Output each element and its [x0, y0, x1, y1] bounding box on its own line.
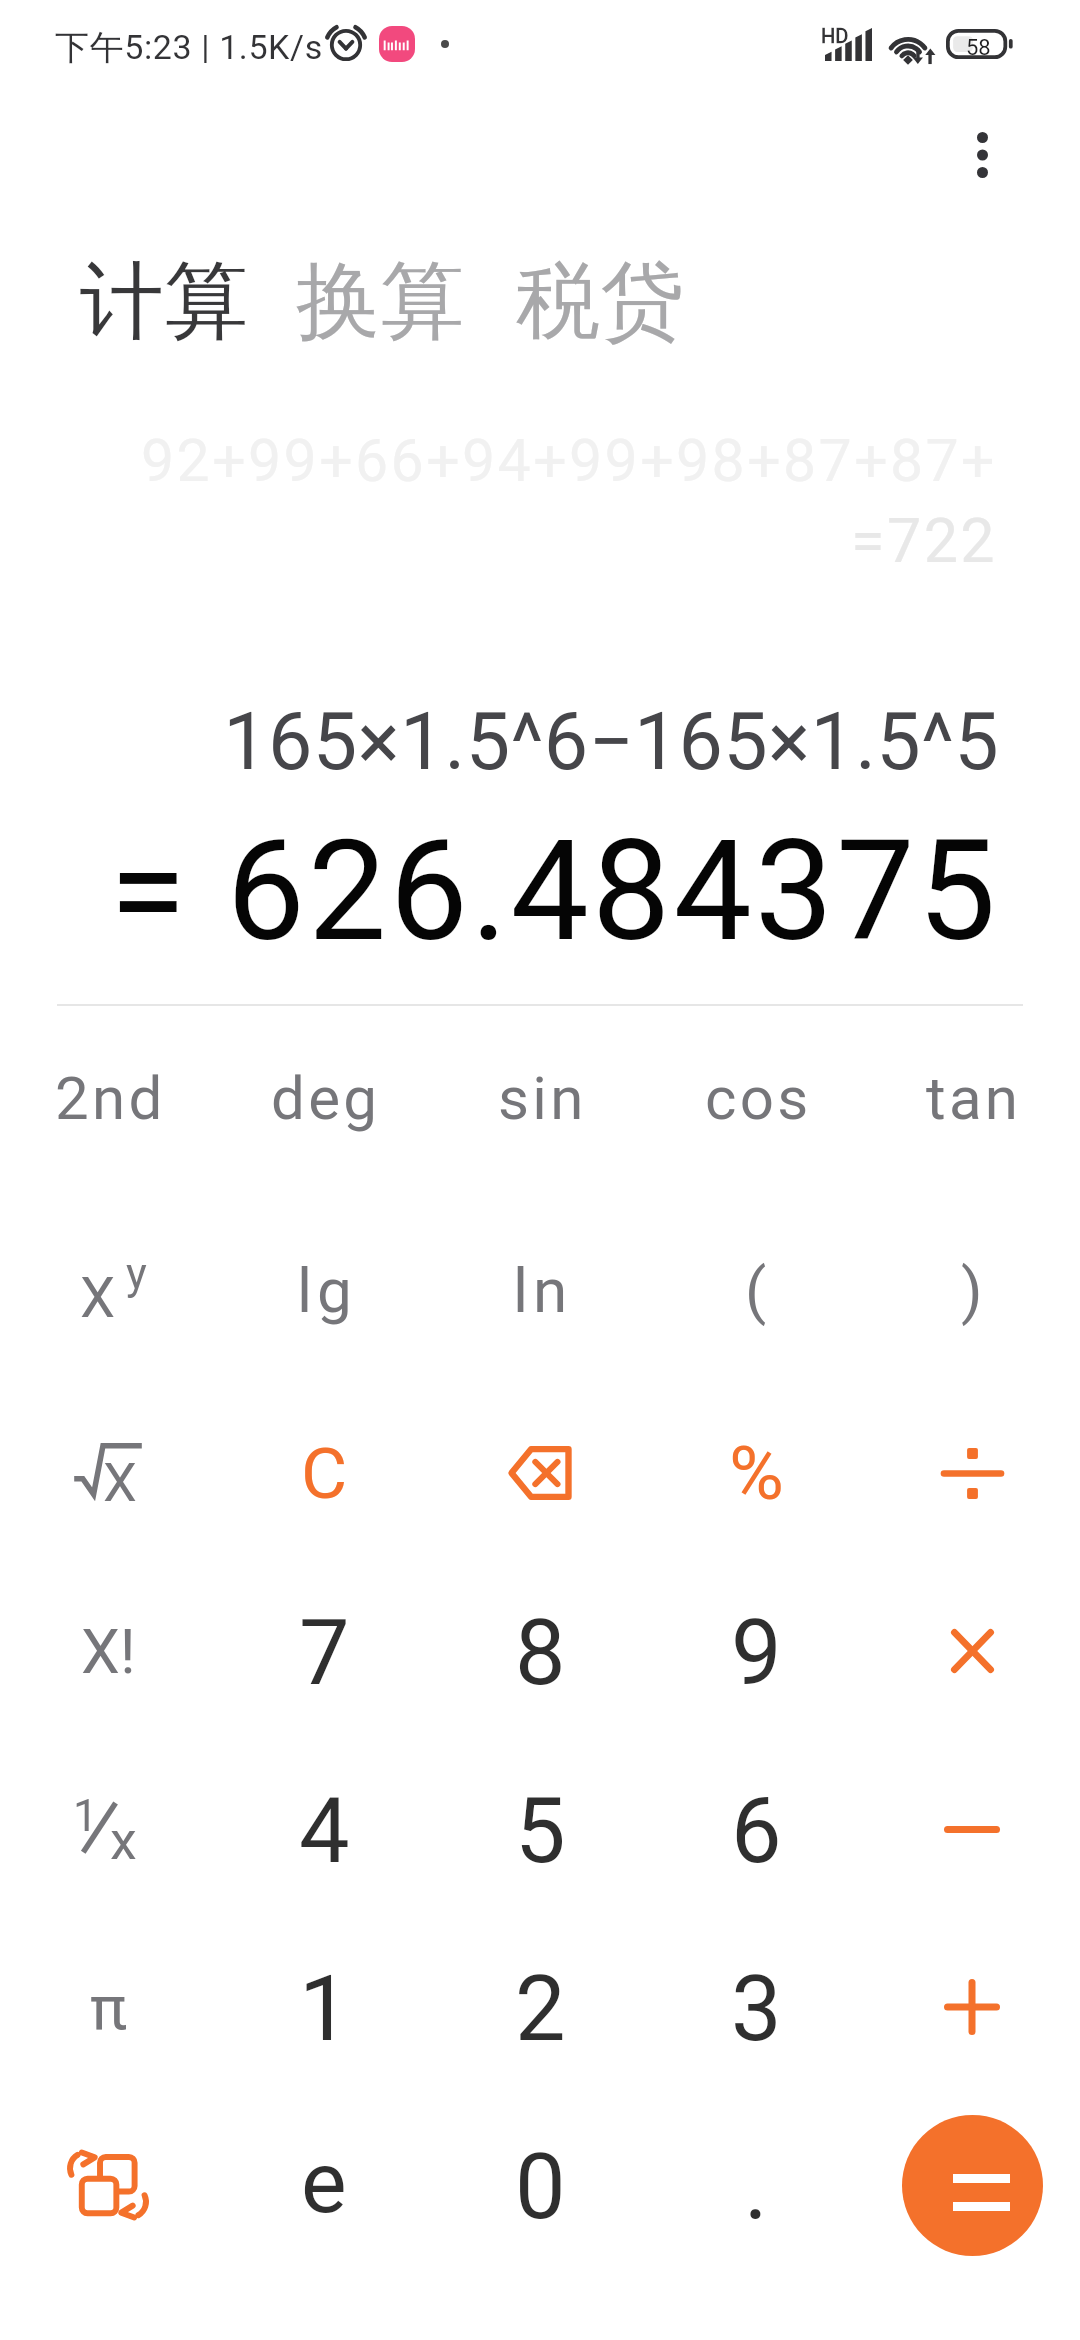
- staticText: HD: [821, 24, 849, 47]
- button[interactable]: %: [648, 1384, 864, 1562]
- staticText: X!: [81, 1615, 136, 1688]
- button[interactable]: (: [648, 1206, 864, 1384]
- button[interactable]: 7: [216, 1562, 432, 1740]
- button[interactable]: ): [864, 1206, 1080, 1384]
- staticText: ): [961, 1254, 983, 1327]
- staticText: =722: [0, 505, 997, 576]
- button[interactable]: e: [216, 2096, 432, 2274]
- staticText: (: [745, 1254, 767, 1327]
- staticText: ln: [513, 1254, 573, 1327]
- button[interactable]: 2nd: [0, 1011, 216, 1189]
- staticText: %: [729, 1429, 784, 1517]
- staticText: y: [126, 1248, 147, 1300]
- staticText: e: [301, 2132, 347, 2233]
- staticText: 税贷: [516, 249, 684, 355]
- button[interactable]: 1: [216, 1918, 432, 2096]
- button[interactable]: 8: [432, 1562, 648, 1740]
- staticText: deg: [271, 1063, 381, 1133]
- staticText: 换算: [296, 249, 464, 355]
- button[interactable]: 6: [648, 1740, 864, 1918]
- staticText: lg: [297, 1254, 357, 1327]
- button[interactable]: deg: [216, 1011, 432, 1189]
- staticText: 92+99+66+94+99+98+87+87+: [0, 426, 997, 495]
- staticText: 2nd: [55, 1063, 166, 1133]
- button[interactable]: Minus: [864, 1740, 1080, 1918]
- staticText: 1: [73, 1790, 98, 1842]
- staticText: 4: [299, 1779, 350, 1884]
- button[interactable]: X!: [0, 1562, 216, 1740]
- staticText: 8: [515, 1601, 566, 1706]
- staticText: 58: [966, 35, 991, 61]
- staticText: tan: [926, 1063, 1022, 1133]
- staticText: X: [103, 1451, 137, 1505]
- button[interactable]: 2: [432, 1918, 648, 2096]
- staticText: 1: [299, 1957, 350, 2062]
- button[interactable]: Plus: [864, 1918, 1080, 2096]
- button[interactable]: Convert: [0, 2096, 216, 2274]
- staticText: π: [90, 1971, 127, 2044]
- button[interactable]: X: [0, 1384, 216, 1562]
- button[interactable]: sin: [432, 1011, 648, 1189]
- button[interactable]: Divide: [864, 1384, 1080, 1562]
- button[interactable]: lg: [216, 1206, 432, 1384]
- button[interactable]: C: [216, 1384, 432, 1562]
- button[interactable]: 1: [0, 1740, 216, 1918]
- staticText: = 626.484375: [0, 810, 999, 973]
- staticText: 下午5:23 | 1.5K/s: [55, 26, 323, 69]
- button[interactable]: 5: [432, 1740, 648, 1918]
- button[interactable]: Backspace: [432, 1384, 648, 1562]
- staticText: sin: [498, 1063, 587, 1133]
- staticText: 0: [515, 2135, 566, 2240]
- staticText: cos: [705, 1063, 812, 1133]
- staticText: .: [744, 2135, 768, 2240]
- button[interactable]: X: [0, 1206, 216, 1384]
- staticText: 7: [299, 1601, 350, 1706]
- button[interactable]: Equals: [864, 2096, 1080, 2274]
- button[interactable]: Multiply: [864, 1562, 1080, 1740]
- button[interactable]: 9: [648, 1562, 864, 1740]
- staticText: 165×1.5^6−165×1.5^5: [0, 696, 999, 789]
- button[interactable]: 4: [216, 1740, 432, 1918]
- button[interactable]: 税贷: [516, 249, 684, 355]
- button[interactable]: ln: [432, 1206, 648, 1384]
- button[interactable]: tan: [864, 1011, 1080, 1189]
- staticText: C: [301, 1432, 348, 1515]
- staticText: 6: [731, 1779, 782, 1884]
- button[interactable]: .: [648, 2096, 864, 2274]
- staticText: x: [110, 1809, 137, 1863]
- staticText: 3: [731, 1957, 782, 2062]
- button[interactable]: cos: [648, 1011, 864, 1189]
- staticText: 9: [731, 1601, 782, 1706]
- button[interactable]: 0: [432, 2096, 648, 2274]
- button[interactable]: π: [0, 1918, 216, 2096]
- staticText: 计算: [80, 249, 248, 355]
- staticText: X: [80, 1265, 116, 1323]
- staticText: 2: [515, 1957, 566, 2062]
- button[interactable]: More options: [932, 105, 1032, 205]
- button[interactable]: 换算: [296, 249, 464, 355]
- staticText: 5: [515, 1779, 566, 1884]
- button[interactable]: 3: [648, 1918, 864, 2096]
- button[interactable]: 计算: [80, 249, 248, 355]
